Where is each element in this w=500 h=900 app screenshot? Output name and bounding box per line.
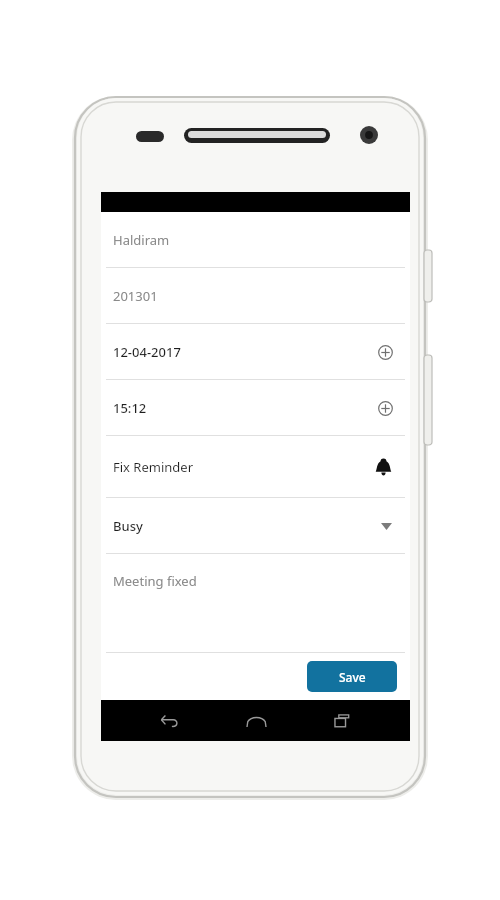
staticText: Meeting fixed (113, 572, 197, 590)
button[interactable]: 12-04-2017 (101, 324, 410, 379)
button[interactable]: 15:12 (101, 380, 410, 435)
button[interactable]: Pick date (372, 339, 398, 365)
button[interactable]: Haldiram (101, 212, 410, 267)
staticText: Save (339, 669, 366, 685)
staticText: 201301 (113, 287, 158, 305)
button[interactable]: Recents (323, 702, 361, 740)
staticText: 12-04-2017 (113, 343, 181, 361)
button[interactable]: 201301 (101, 268, 410, 323)
button[interactable]: Busy (101, 498, 410, 553)
button[interactable]: Meeting fixed (101, 554, 410, 652)
staticText: Busy (113, 517, 143, 535)
staticText: Haldiram (113, 231, 170, 249)
button[interactable]: Save (307, 661, 397, 692)
staticText: Fix Reminder (113, 458, 194, 476)
button[interactable]: Set reminder (368, 452, 398, 482)
button[interactable]: Back (150, 702, 188, 740)
staticText: 15:12 (113, 399, 147, 417)
button[interactable]: Fix Reminder (101, 436, 410, 497)
button[interactable]: Open dropdown (374, 514, 398, 538)
button[interactable]: Home (237, 702, 275, 740)
button[interactable]: Pick time (372, 395, 398, 421)
